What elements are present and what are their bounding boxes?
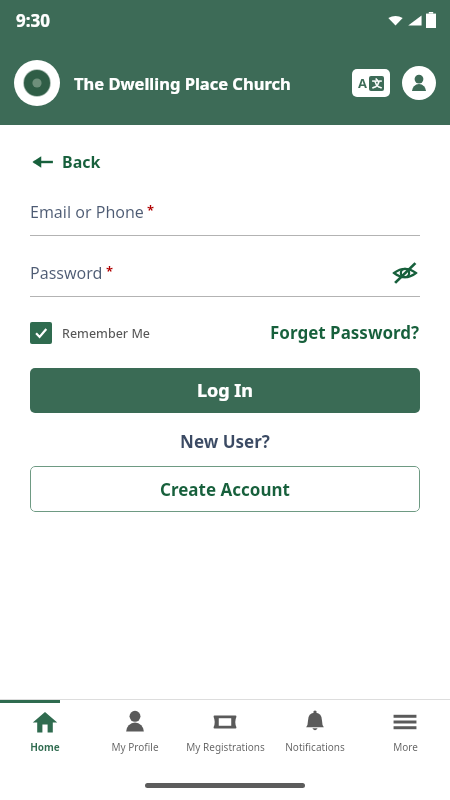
staticText: Password bbox=[30, 262, 103, 284]
button[interactable]: Account bbox=[402, 66, 436, 100]
staticText: Notifications bbox=[285, 740, 345, 754]
staticText: My Registrations bbox=[186, 740, 265, 754]
staticText: The Dwelling Place Church bbox=[74, 72, 352, 94]
staticText: A bbox=[358, 74, 367, 92]
button[interactable]: Show password bbox=[390, 258, 420, 288]
staticText: 文 bbox=[372, 77, 382, 90]
button[interactable]: Notifications bbox=[270, 700, 360, 770]
staticText: Remember Me bbox=[62, 325, 151, 342]
staticText: * bbox=[147, 201, 155, 219]
button[interactable]: Forget Password? bbox=[270, 319, 420, 346]
button[interactable]: My Registrations bbox=[180, 700, 270, 770]
button[interactable]: Home bbox=[0, 700, 90, 770]
button[interactable]: Back bbox=[28, 147, 105, 177]
staticText: 9:30 bbox=[16, 9, 50, 32]
staticText: Forget Password? bbox=[270, 321, 420, 344]
staticText: Create Account bbox=[160, 478, 290, 501]
button[interactable]: My Profile bbox=[90, 700, 180, 770]
staticText: Email or Phone bbox=[30, 201, 144, 223]
button[interactable]: More bbox=[360, 700, 450, 770]
staticText: * bbox=[106, 262, 114, 280]
button[interactable]: Create Account bbox=[30, 466, 420, 512]
staticText: New User? bbox=[30, 430, 420, 453]
button[interactable]: Remember Me bbox=[30, 320, 151, 346]
staticText: Back bbox=[62, 151, 101, 173]
button[interactable]: Log In bbox=[30, 368, 420, 413]
button[interactable]: Translate bbox=[352, 69, 390, 97]
staticText: Home bbox=[30, 740, 60, 754]
staticText: My Profile bbox=[111, 740, 159, 754]
staticText: More bbox=[393, 740, 418, 754]
staticText: Log In bbox=[197, 378, 254, 403]
